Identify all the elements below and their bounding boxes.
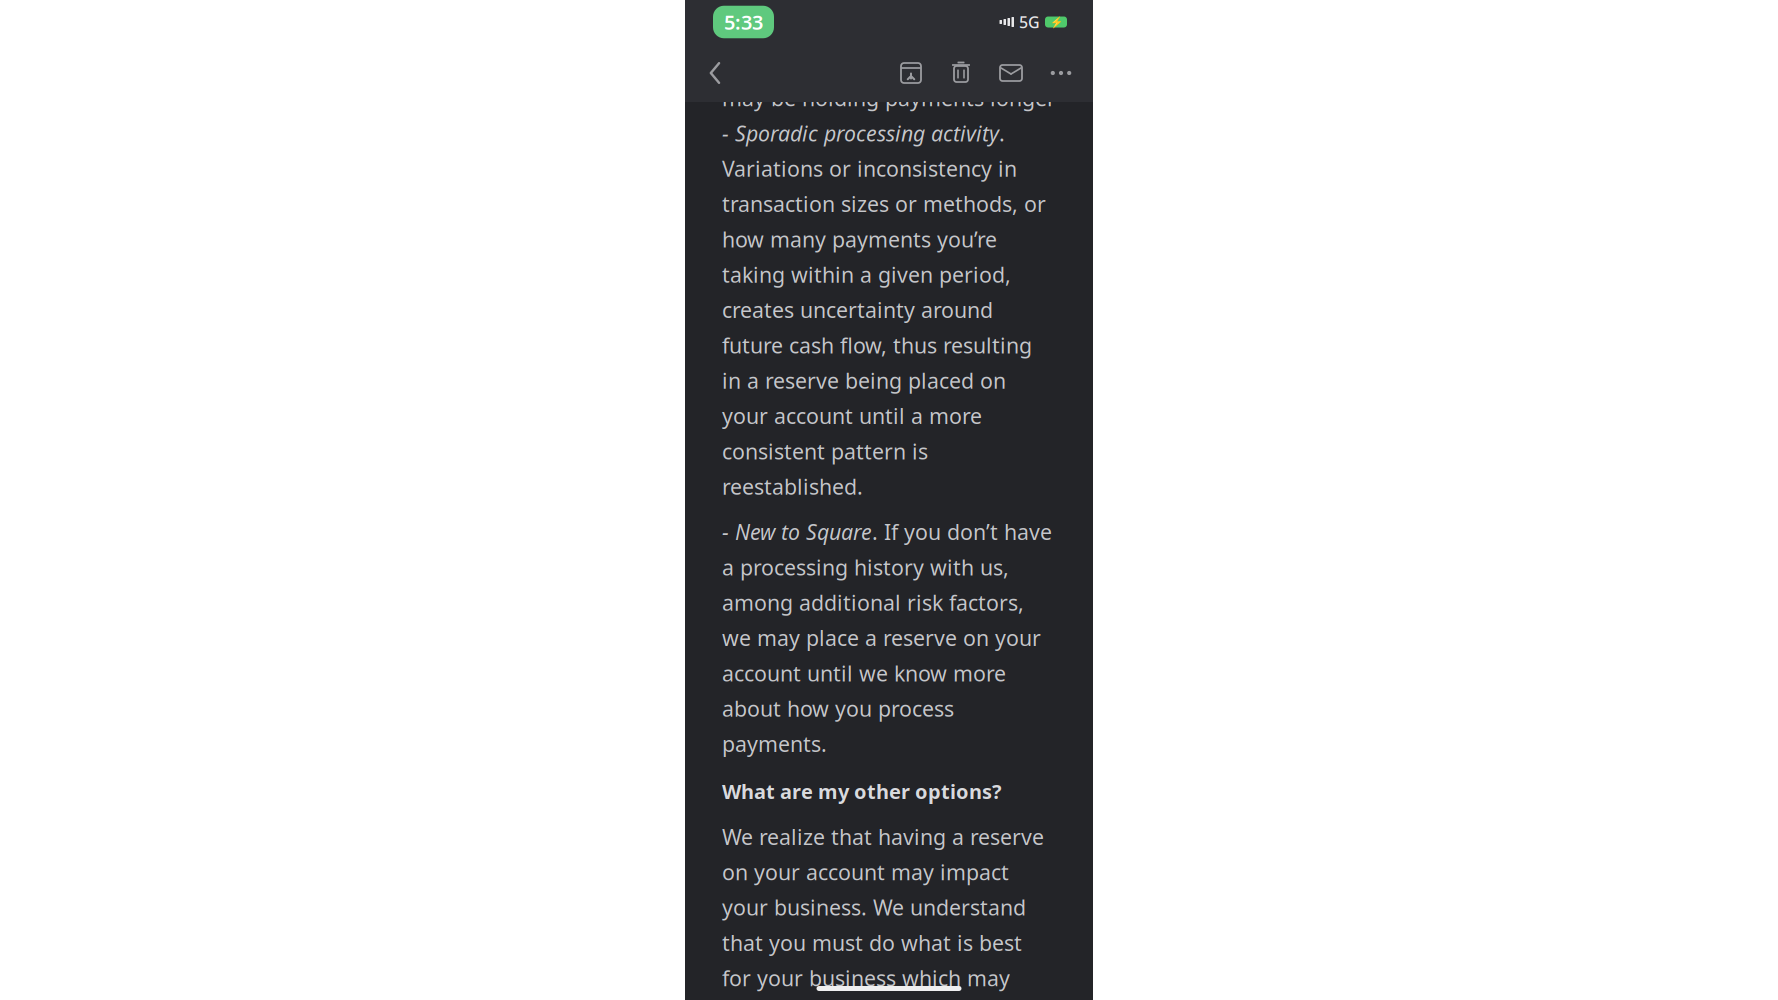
- staticText: ⚡: [1049, 16, 1062, 28]
- staticText: 5G: [1019, 11, 1040, 33]
- staticText: What are my other options?: [722, 778, 1002, 804]
- staticText: - New to Square. If you don’t have a pro…: [722, 518, 1052, 758]
- staticText: may be holding payments longer: [722, 84, 1056, 112]
- button[interactable]: Archive: [889, 51, 933, 95]
- button[interactable]: Delete: [939, 51, 983, 95]
- button[interactable]: Back: [693, 51, 737, 95]
- button[interactable]: More options: [1039, 51, 1083, 95]
- staticText: We realize that having a reserve on your…: [722, 822, 1044, 1000]
- staticText: - Sporadic processing activity. Variatio…: [722, 119, 1046, 501]
- staticText: 5:33: [724, 9, 763, 35]
- button[interactable]: Mark as unread: [989, 51, 1033, 95]
